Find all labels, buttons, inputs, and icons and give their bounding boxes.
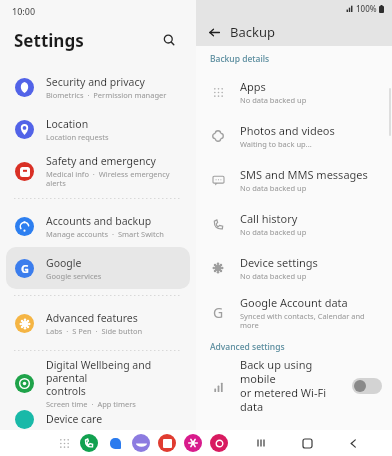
staticText: Biometrics · Permission manager	[46, 90, 167, 100]
button[interactable]: Security and privacy	[6, 66, 190, 108]
staticText: Advanced features	[46, 311, 138, 325]
staticText: Google Account data	[240, 295, 348, 310]
button[interactable]: Gallery	[184, 434, 202, 452]
button[interactable]: Apps	[196, 70, 392, 114]
button[interactable]: Apps	[56, 435, 72, 451]
button[interactable]: Device settings	[196, 246, 392, 290]
button[interactable]: Device care	[6, 409, 190, 429]
button[interactable]: Photos and videos	[196, 114, 392, 158]
staticText: No data backed up	[240, 95, 307, 105]
button[interactable]: Location	[6, 108, 190, 150]
staticText: Backup details	[210, 53, 270, 65]
button[interactable]: Notes	[158, 434, 176, 452]
staticText: Google	[46, 256, 82, 270]
staticText: Digital Wellbeing and parental controls	[46, 358, 182, 398]
button[interactable]: Back	[202, 20, 226, 44]
staticText: No data backed up	[240, 271, 307, 281]
button[interactable]: Digital Wellbeing and parental controls	[6, 357, 190, 409]
button[interactable]: Accounts and backup	[6, 205, 190, 247]
button[interactable]: G	[196, 290, 392, 334]
staticText: SMS and MMS messages	[240, 167, 368, 182]
staticText: Device settings	[240, 255, 318, 270]
staticText: No data backed up	[240, 227, 307, 237]
staticText: Location requests	[46, 132, 109, 142]
staticText: Synced with contacts, Calendar and more	[240, 311, 382, 330]
button[interactable]: G	[6, 247, 190, 289]
staticText: Backup	[230, 23, 275, 41]
staticText: 100%	[356, 3, 377, 14]
staticText: Security and privacy	[46, 75, 145, 89]
button[interactable]: SMS and MMS messages	[196, 158, 392, 202]
staticText: Medical info · Wireless emergency alerts	[46, 169, 182, 188]
button[interactable]: Back	[344, 434, 362, 452]
staticText: Screen time · App timers	[46, 399, 136, 409]
staticText: Manage accounts · Smart Switch	[46, 229, 164, 239]
staticText: Advanced settings	[210, 341, 285, 353]
button[interactable]: Call history	[196, 202, 392, 246]
staticText: Labs · S Pen · Side button	[46, 326, 143, 336]
button[interactable]: Advanced features	[6, 302, 190, 344]
button[interactable]: Internet	[132, 434, 150, 452]
staticText: Safety and emergency	[46, 154, 156, 168]
staticText: Google services	[46, 271, 102, 281]
button[interactable]: Recents	[252, 434, 270, 452]
staticText: Apps	[240, 79, 266, 94]
button[interactable]: Home	[298, 434, 316, 452]
staticText: No data backed up	[240, 183, 307, 193]
staticText: Device care	[46, 412, 103, 426]
staticText: Back up using mobile or metered Wi-Fi da…	[240, 357, 346, 414]
staticText: Location	[46, 117, 89, 131]
staticText: Accounts and backup	[46, 214, 152, 228]
staticText: Settings	[14, 29, 84, 52]
button[interactable]: Search	[156, 27, 182, 53]
staticText: Waiting to back up...	[240, 139, 312, 149]
staticText: G	[21, 261, 29, 276]
button[interactable]: Back up using mobile or metered Wi-Fi da…	[196, 357, 392, 415]
button[interactable]: Back up using mobile data toggle	[352, 378, 382, 394]
staticText: Photos and videos	[240, 123, 335, 138]
button[interactable]: Camera	[210, 434, 228, 452]
staticText: G	[213, 303, 224, 322]
button[interactable]: Safety and emergency	[6, 150, 190, 192]
staticText: Call history	[240, 211, 298, 226]
button[interactable]: Phone	[80, 434, 98, 452]
staticText: 10:00	[12, 5, 36, 17]
button[interactable]: Messages	[106, 434, 124, 452]
